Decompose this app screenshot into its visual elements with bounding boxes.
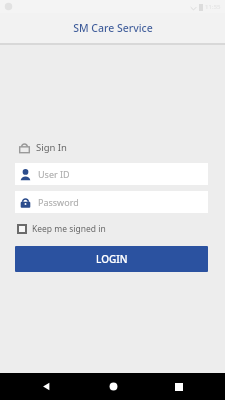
staticText: SM Care Service bbox=[73, 21, 153, 35]
staticText: Sign In bbox=[36, 141, 67, 154]
staticText: User ID bbox=[38, 168, 70, 180]
staticText: Keep me signed in bbox=[32, 223, 106, 235]
button[interactable]: LOGIN bbox=[15, 246, 208, 272]
button[interactable]: Home bbox=[93, 373, 133, 400]
button[interactable]: Back bbox=[26, 373, 66, 400]
staticText: LOGIN bbox=[96, 252, 128, 266]
button[interactable]: Password bbox=[15, 191, 208, 213]
button[interactable]: Keep me signed in bbox=[15, 221, 110, 237]
staticText: Password bbox=[38, 196, 79, 208]
button[interactable]: Recent apps bbox=[159, 373, 199, 400]
staticText: 11:55 bbox=[205, 3, 221, 11]
button[interactable]: User ID bbox=[15, 163, 208, 185]
